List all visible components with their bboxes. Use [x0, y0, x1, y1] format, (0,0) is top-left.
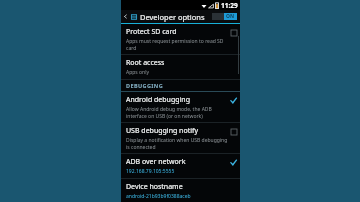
- staticText: Apps must request permission to read SD …: [126, 38, 228, 51]
- button[interactable]: USB debugging notify: [121, 123, 240, 153]
- staticText: DEBUGGING: [126, 82, 164, 89]
- button[interactable]: Protect SD card: [121, 24, 240, 54]
- staticText: 11:29: [221, 1, 238, 10]
- button[interactable]: Android debugging: [121, 92, 240, 122]
- staticText: Root access: [126, 58, 165, 68]
- staticText: Display a notification when USB debuggin…: [126, 137, 228, 150]
- staticText: Protect SD card: [126, 27, 177, 37]
- staticText: 192.168.79.105:5555: [126, 168, 175, 175]
- staticText: Allow Android debug mode, the ADB interf…: [126, 106, 228, 119]
- button[interactable]: Root access: [121, 55, 240, 79]
- button[interactable]: Developer options on: [212, 13, 237, 20]
- staticText: ON: [226, 13, 235, 20]
- staticText: android-21b93b9f0388aceb: [126, 193, 191, 199]
- staticText: Device hostname: [126, 182, 183, 192]
- button[interactable]: Device hostname: [121, 179, 240, 202]
- staticText: ADB over network: [126, 157, 186, 167]
- staticText: USB debugging notify: [126, 126, 198, 136]
- button[interactable]: ADB over network: [121, 154, 240, 178]
- staticText: Android debugging: [126, 95, 190, 105]
- button[interactable]: Navigate up: [121, 12, 130, 21]
- staticText: Apps only: [126, 69, 149, 76]
- staticText: Developer options: [140, 12, 212, 22]
